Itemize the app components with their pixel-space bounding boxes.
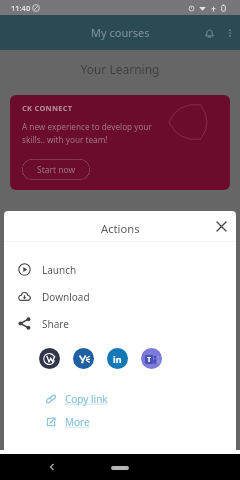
staticText: Launch xyxy=(42,263,77,277)
staticText: Share xyxy=(42,317,69,331)
staticText: Your Learning xyxy=(0,61,240,77)
staticText: Start now xyxy=(37,164,76,176)
button[interactable]: Copy link xyxy=(4,387,236,410)
button[interactable]: Home xyxy=(111,466,129,470)
button[interactable]: Yammer xyxy=(73,348,94,369)
staticText: CK CONNECT xyxy=(22,103,73,113)
staticText: Copy link xyxy=(65,392,108,406)
staticText: Download xyxy=(42,290,90,304)
button[interactable]: Workplace xyxy=(39,348,60,369)
staticText: More xyxy=(65,415,90,429)
button[interactable]: Start now xyxy=(22,159,90,180)
staticText: My courses xyxy=(91,25,150,40)
staticText: 11:40 xyxy=(11,3,31,13)
button[interactable]: More options xyxy=(220,23,240,43)
button[interactable]: Share xyxy=(4,310,236,337)
button[interactable]: Close xyxy=(206,211,236,241)
button[interactable]: More xyxy=(4,410,236,433)
button[interactable]: Launch xyxy=(4,256,236,283)
button[interactable]: Download xyxy=(4,283,236,310)
staticText: in xyxy=(113,353,122,365)
staticText: Actions xyxy=(101,221,140,236)
button[interactable]: LinkedIn xyxy=(107,348,128,369)
staticText: A new experience to develop your skills.… xyxy=(22,121,152,146)
button[interactable]: Notifications xyxy=(198,22,220,44)
button[interactable]: Back xyxy=(44,459,60,475)
button[interactable]: CK CONNECT xyxy=(10,95,230,190)
staticText: T xyxy=(147,355,152,364)
button[interactable]: Teams xyxy=(141,348,162,369)
